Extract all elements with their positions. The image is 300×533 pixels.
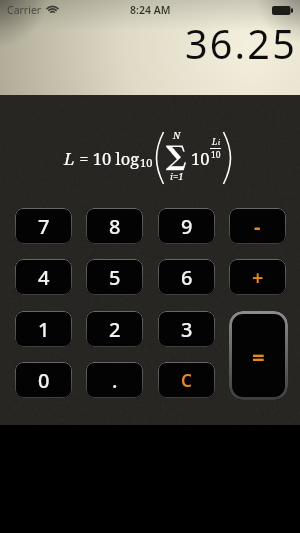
staticText: + bbox=[252, 264, 264, 291]
staticText: 8 bbox=[109, 213, 121, 240]
staticText: 4 bbox=[38, 264, 50, 291]
button[interactable]: 2 bbox=[86, 311, 143, 347]
staticText: i=1 bbox=[170, 170, 184, 183]
staticText: 5 bbox=[109, 264, 121, 291]
staticText: 10 bbox=[191, 147, 210, 169]
button[interactable]: 9 bbox=[158, 208, 215, 244]
staticText: 8:24 AM bbox=[130, 3, 171, 17]
button[interactable]: 5 bbox=[86, 259, 143, 295]
staticText: Carrier bbox=[7, 3, 42, 17]
staticText: C bbox=[181, 369, 192, 392]
staticText: . bbox=[112, 367, 118, 394]
staticText: - bbox=[254, 213, 261, 240]
button[interactable]: 4 bbox=[15, 259, 72, 295]
button[interactable]: = bbox=[229, 311, 288, 400]
button[interactable]: 8 bbox=[86, 208, 143, 244]
button[interactable]: + bbox=[229, 259, 286, 295]
button[interactable]: 1 bbox=[15, 311, 72, 347]
staticText: 10 bbox=[140, 155, 153, 170]
staticText: 7 bbox=[38, 213, 50, 240]
staticText: 9 bbox=[181, 213, 193, 240]
staticText: 6 bbox=[181, 264, 193, 291]
staticText: 0 bbox=[38, 367, 50, 394]
staticText: = bbox=[252, 341, 265, 371]
staticText: N bbox=[173, 129, 181, 142]
staticText: 2 bbox=[109, 316, 121, 343]
button[interactable]: C bbox=[158, 362, 215, 398]
staticText: L bbox=[64, 147, 75, 170]
staticText: 3 bbox=[181, 316, 193, 343]
staticText: 36.25 bbox=[185, 17, 297, 71]
button[interactable]: 7 bbox=[15, 208, 72, 244]
button[interactable]: - bbox=[229, 208, 286, 244]
staticText: ∑ bbox=[166, 140, 187, 172]
button[interactable]: 3 bbox=[158, 311, 215, 347]
staticText: 1 bbox=[38, 316, 50, 343]
button[interactable]: 6 bbox=[158, 259, 215, 295]
button[interactable]: . bbox=[86, 362, 143, 398]
button[interactable]: 0 bbox=[15, 362, 72, 398]
staticText: = 10 log bbox=[75, 147, 140, 169]
staticText: L bbox=[212, 136, 218, 148]
staticText: i bbox=[218, 138, 220, 147]
staticText: 10 bbox=[211, 149, 221, 161]
